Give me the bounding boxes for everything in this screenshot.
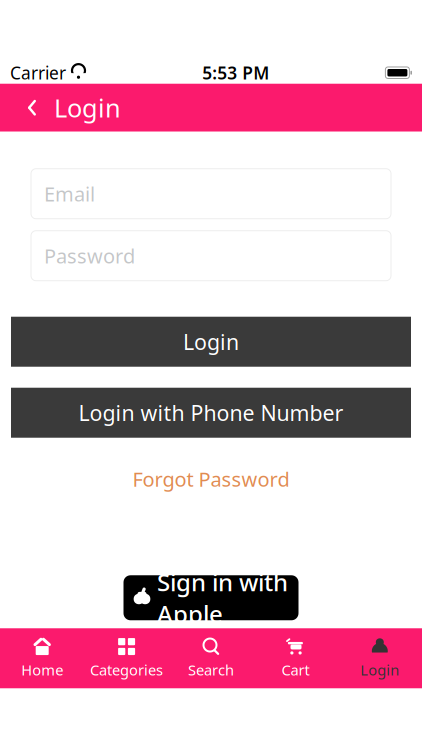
staticText: Login with Phone Number [78, 399, 343, 427]
button[interactable]: Login with Phone Number [11, 388, 411, 438]
staticText: Login [54, 91, 121, 124]
staticText: Password [44, 242, 135, 269]
staticText: Sign in with Apple [157, 566, 288, 630]
staticText: Login [183, 328, 239, 356]
staticText: Forgot Password [132, 466, 289, 492]
staticText: Search [188, 660, 234, 679]
staticText: Email [44, 180, 95, 207]
button[interactable]: Back [10, 84, 54, 132]
button[interactable]: Password [31, 231, 391, 281]
button[interactable]: Email [31, 169, 391, 219]
staticText: Cart [281, 660, 309, 679]
button[interactable]: Cart [253, 628, 338, 688]
staticText: Categories [90, 660, 163, 679]
staticText: 5:53 PM [202, 61, 269, 84]
button[interactable]: Login [11, 317, 411, 367]
button[interactable]: Search [169, 628, 253, 688]
staticText: Home [21, 660, 63, 679]
button[interactable]: Login [338, 628, 422, 688]
staticText: Carrier [10, 61, 66, 84]
button[interactable]: Categories [84, 628, 169, 688]
button[interactable]: Sign in with Apple [123, 575, 298, 620]
button[interactable]: Home [0, 628, 84, 688]
button[interactable]: Forgot Password [120, 460, 301, 498]
staticText: Login [360, 660, 399, 679]
